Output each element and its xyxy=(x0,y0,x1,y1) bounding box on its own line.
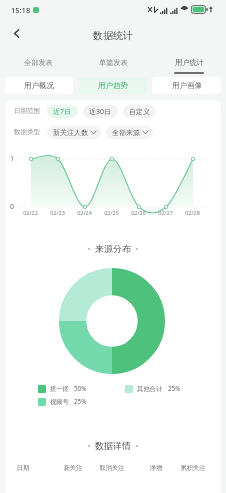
staticText: 02/22 xyxy=(17,209,44,216)
staticText: 用户统计 xyxy=(175,58,204,67)
button[interactable]: 用户画像 xyxy=(152,77,221,94)
staticText: 单篇发表 xyxy=(99,58,128,67)
staticText: 数据详情 xyxy=(95,440,131,451)
staticText: 1 xyxy=(10,154,15,164)
staticText: 15:18 xyxy=(11,5,31,15)
staticText: 数据统计 xyxy=(93,29,133,42)
button[interactable]: 用户统计 xyxy=(151,48,226,76)
staticText: 02/25 xyxy=(98,209,125,216)
staticText: 累积关注 xyxy=(173,464,213,472)
button[interactable]: 用户趋势 xyxy=(78,77,147,94)
staticText: 其他合计 xyxy=(137,385,163,393)
staticText: 25% xyxy=(74,397,87,406)
button[interactable]: 近7日 xyxy=(47,105,78,118)
button[interactable]: 单篇发表 xyxy=(76,48,151,76)
staticText: 取消关注 xyxy=(92,464,132,472)
button[interactable]: 近30日 xyxy=(83,105,118,118)
staticText: 50% xyxy=(74,384,87,393)
button[interactable]: 自定义 xyxy=(123,105,156,118)
staticText: 自定义 xyxy=(129,107,150,116)
staticText: 日期 xyxy=(5,464,43,472)
staticText: 来源分布 xyxy=(95,243,131,254)
staticText: 视频号 xyxy=(50,398,69,406)
button[interactable]: 全部来源 xyxy=(106,126,153,139)
staticText: 全部发表 xyxy=(24,58,53,67)
button[interactable]: 全部发表 xyxy=(0,48,76,76)
staticText: 搓一搓 xyxy=(50,385,69,393)
staticText: 02/26 xyxy=(125,209,152,216)
staticText: 02/27 xyxy=(152,209,179,216)
staticText: 25% xyxy=(168,384,181,393)
button[interactable]: 新关注人数 xyxy=(47,126,101,139)
staticText: 近30日 xyxy=(89,107,112,117)
button[interactable]: Back xyxy=(3,20,29,46)
staticText: 0 xyxy=(10,202,15,212)
staticText: 02/24 xyxy=(71,209,98,216)
staticText: 净增 xyxy=(136,464,176,472)
staticText: 用户趋势 xyxy=(98,81,128,90)
button[interactable]: 用户概况 xyxy=(5,77,73,94)
staticText: 全部来源 xyxy=(112,128,140,137)
staticText: 用户概况 xyxy=(24,81,54,90)
staticText: 数据类型 xyxy=(14,128,40,136)
staticText: 02/28 xyxy=(179,209,206,216)
staticText: 新关注 xyxy=(53,464,93,472)
staticText: 日期范围 xyxy=(14,107,40,115)
staticText: 新关注人数 xyxy=(53,128,88,137)
staticText: 近7日 xyxy=(53,107,72,117)
staticText: 用户画像 xyxy=(172,81,202,90)
staticText: 02/23 xyxy=(44,209,71,216)
